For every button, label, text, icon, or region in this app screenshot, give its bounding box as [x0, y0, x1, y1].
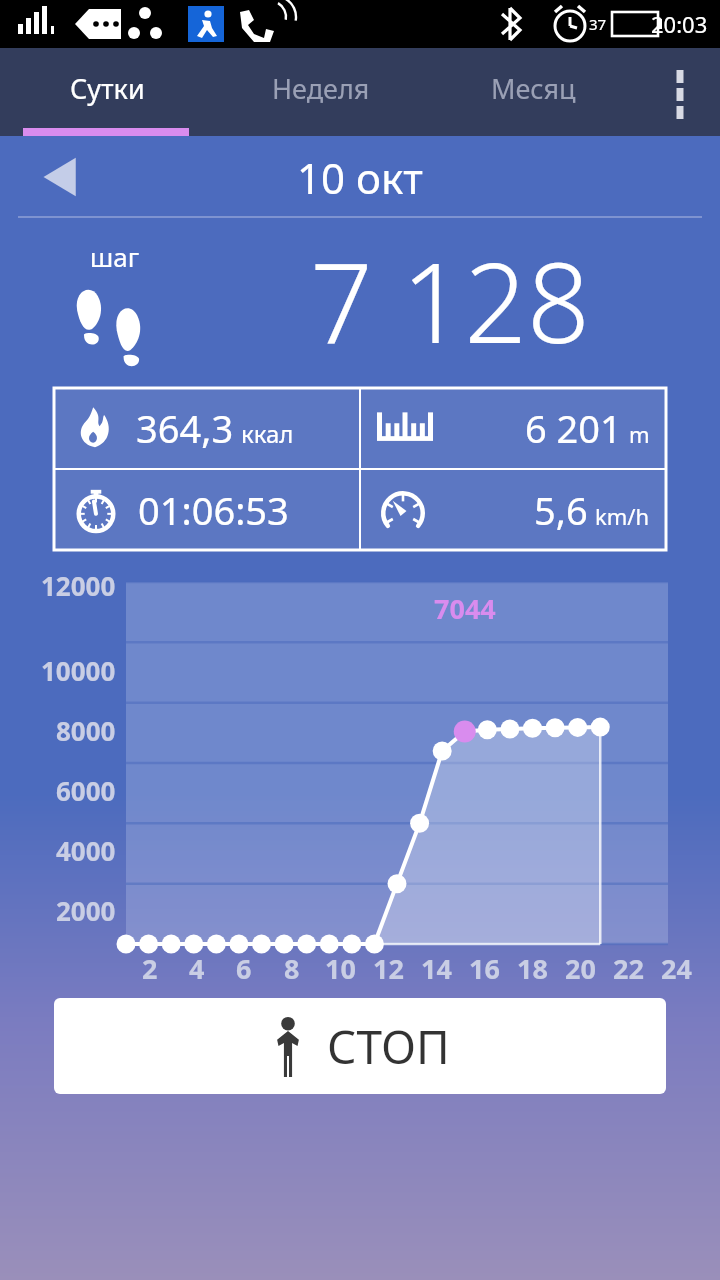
staticText: 5,6 — [534, 484, 588, 536]
staticText: 20:03 — [651, 9, 708, 39]
staticText: 12000 — [41, 568, 116, 598]
staticText: 22 — [613, 950, 644, 987]
staticText: 364,3 — [136, 402, 234, 454]
staticText: 8 — [284, 950, 300, 987]
staticText: 2 — [142, 950, 158, 987]
staticText: 10000 — [41, 653, 116, 688]
staticText: Неделя — [272, 70, 370, 107]
staticText: Сутки — [70, 70, 145, 107]
staticText: 6 — [236, 950, 252, 987]
staticText: 8000 — [56, 713, 116, 748]
staticText: 7044 — [434, 590, 496, 627]
button[interactable]: Месяц — [427, 48, 640, 136]
staticText: 20 — [565, 950, 596, 987]
staticText: 16 — [469, 950, 500, 987]
button[interactable]: Сутки — [0, 48, 214, 136]
staticText: 2000 — [56, 893, 116, 928]
staticText: 4000 — [56, 833, 116, 868]
button[interactable]: 5,6 — [361, 470, 666, 550]
staticText: СТОП — [327, 1015, 450, 1078]
button[interactable]: 01:06:53 — [54, 470, 359, 550]
staticText: 6000 — [56, 773, 116, 808]
staticText: km/h — [595, 501, 650, 531]
button[interactable]: 6 201 — [361, 388, 666, 468]
staticText: 10 окт — [297, 149, 423, 206]
staticText: 4 — [189, 950, 205, 987]
staticText: шаг — [90, 239, 140, 274]
staticText: m — [629, 419, 650, 449]
staticText: ккал — [241, 417, 294, 450]
staticText: 7 128 — [310, 225, 590, 375]
staticText: 6 201 — [525, 402, 622, 454]
staticText: 14 — [421, 950, 452, 987]
staticText: Месяц — [491, 70, 576, 107]
button[interactable]: Неделя — [214, 48, 427, 136]
staticText: 24 — [661, 950, 692, 987]
staticText: 18 — [517, 950, 548, 987]
button[interactable]: Previous day — [26, 142, 96, 212]
staticText: 01:06:53 — [138, 484, 289, 536]
button[interactable]: More options — [640, 48, 720, 136]
button[interactable]: СТОП — [54, 998, 666, 1094]
staticText: 10 — [325, 950, 356, 987]
button[interactable]: 364,3 — [54, 388, 359, 468]
staticText: 37 — [589, 14, 607, 34]
staticText: 12 — [373, 950, 404, 987]
